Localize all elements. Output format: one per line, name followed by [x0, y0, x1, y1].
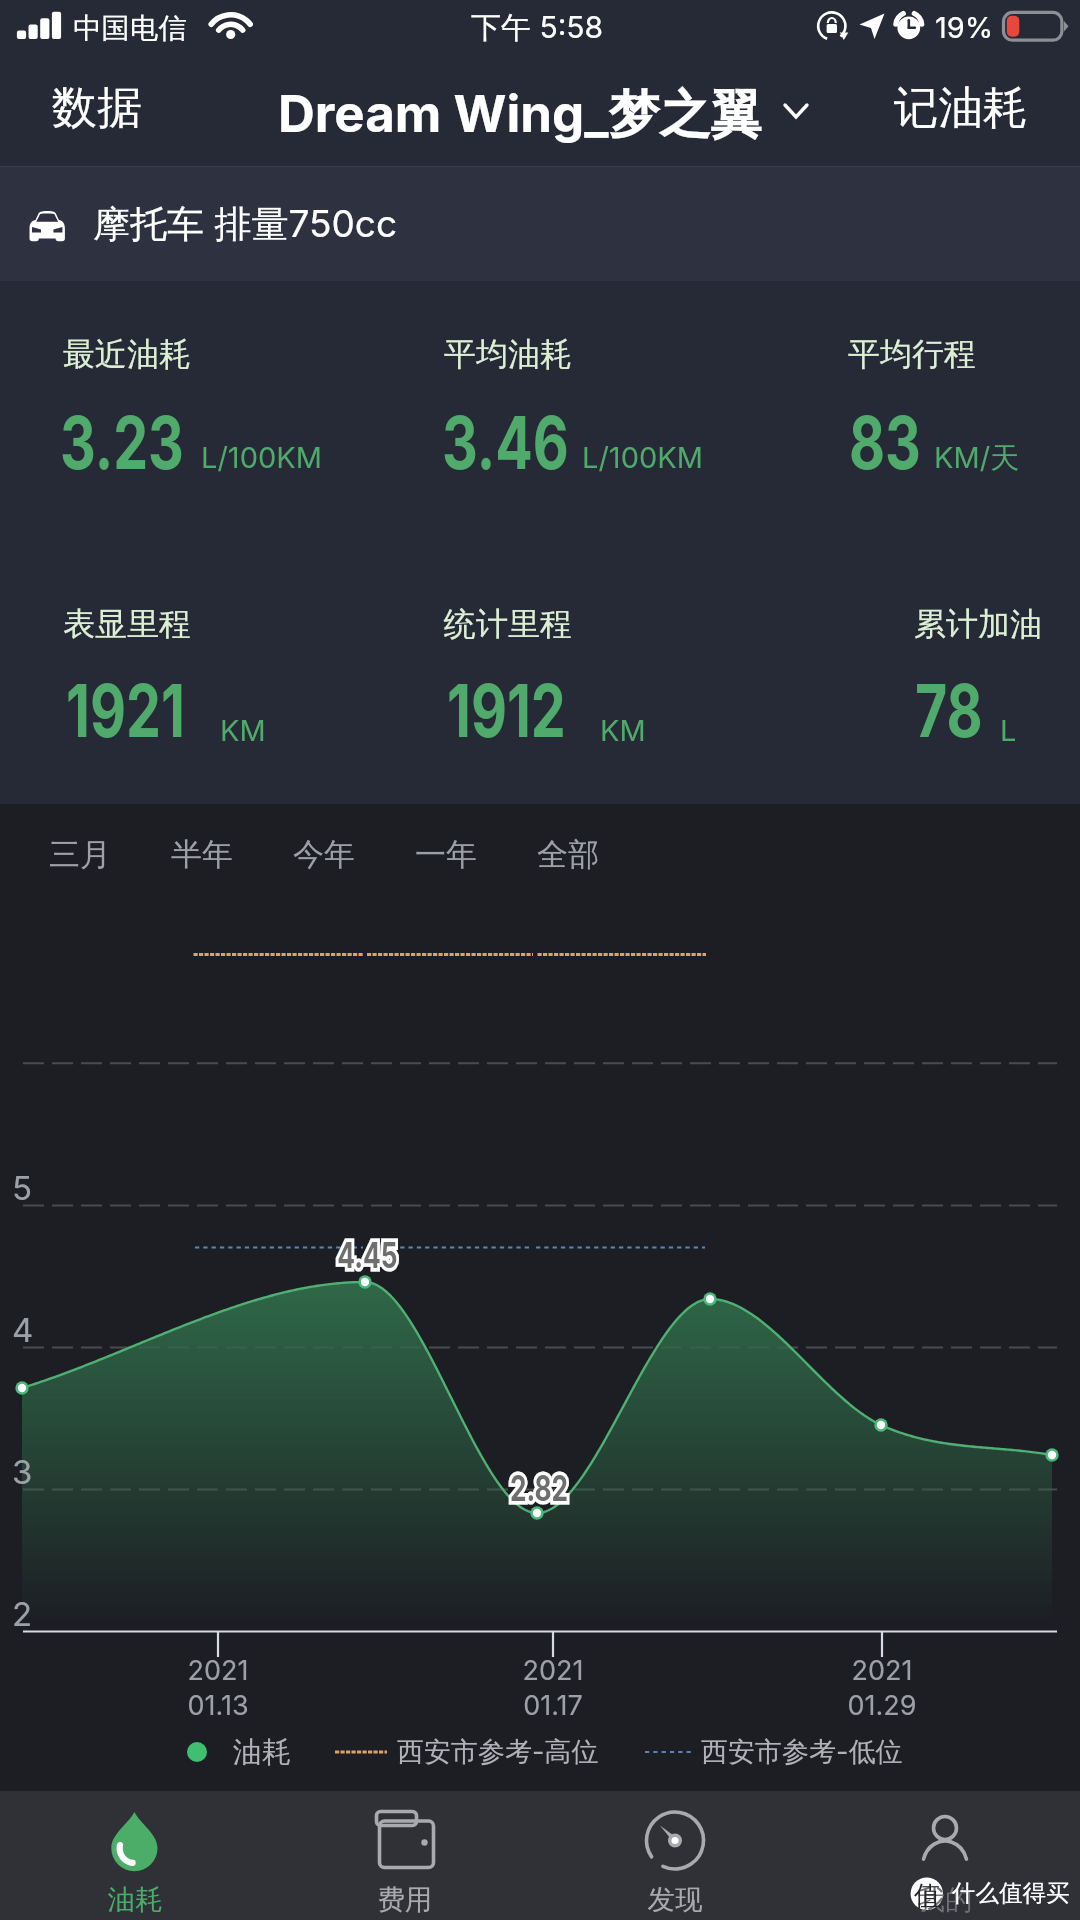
- staticText: 我的: [915, 1883, 975, 1918]
- staticText: 2.82: [510, 1467, 568, 1509]
- button[interactable]: 发现: [540, 1791, 810, 1920]
- staticText: 统计里程: [444, 604, 572, 644]
- button[interactable]: 半年: [153, 818, 251, 884]
- staticText: 01.13: [118, 1689, 318, 1722]
- staticText: 4.45: [337, 1234, 398, 1276]
- staticText: 今年: [293, 835, 355, 874]
- staticText: 油耗: [105, 1883, 165, 1918]
- staticText: 3.46: [442, 398, 569, 486]
- staticText: 什么值得买: [952, 1878, 1070, 1908]
- staticText: 平均油耗: [444, 334, 572, 374]
- staticText: 2021: [782, 1654, 982, 1687]
- staticText: 2021: [453, 1654, 653, 1687]
- staticText: KM: [220, 713, 266, 748]
- staticText: 油耗: [233, 1734, 291, 1771]
- staticText: 19%: [935, 10, 994, 45]
- button[interactable]: 一年: [397, 818, 495, 884]
- staticText: 2: [12, 1594, 33, 1634]
- staticText: 1912: [447, 666, 566, 754]
- staticText: L/100KM: [201, 440, 322, 475]
- staticText: 3.23: [60, 398, 185, 486]
- staticText: 01.29: [782, 1689, 982, 1722]
- staticText: 记油耗: [894, 80, 1028, 136]
- staticText: 最近油耗: [63, 334, 191, 374]
- staticText: 3: [12, 1452, 33, 1492]
- button[interactable]: 油耗: [0, 1791, 270, 1920]
- staticText: 摩托车 排量750cc: [93, 201, 398, 248]
- staticText: 中国电信: [73, 11, 187, 47]
- staticText: 83: [849, 398, 921, 486]
- button[interactable]: 全部: [519, 818, 617, 884]
- staticText: 01.17: [453, 1689, 653, 1722]
- staticText: 费用: [375, 1883, 435, 1918]
- staticText: KM/天: [934, 440, 1020, 477]
- staticText: 5: [12, 1168, 33, 1208]
- button[interactable]: 我的: [810, 1791, 1080, 1920]
- staticText: 西安市参考-高位: [397, 1735, 599, 1769]
- staticText: L: [1000, 713, 1017, 748]
- staticText: 半年: [171, 835, 233, 874]
- staticText: 发现: [645, 1883, 705, 1918]
- staticText: 表显里程: [63, 604, 191, 644]
- staticText: 一年: [415, 835, 477, 874]
- staticText: 数据: [52, 80, 142, 137]
- button[interactable]: 今年: [275, 818, 373, 884]
- staticText: 下午 5:58: [471, 9, 604, 47]
- staticText: 2.82: [510, 1467, 568, 1509]
- staticText: 2021: [118, 1654, 318, 1687]
- staticText: 4.45: [337, 1234, 398, 1276]
- button[interactable]: 记油耗: [860, 68, 1060, 164]
- staticText: 累计加油: [914, 604, 1042, 644]
- staticText: 全部: [537, 835, 599, 874]
- staticText: 78: [915, 666, 983, 754]
- staticText: 西安市参考-低位: [701, 1735, 903, 1769]
- staticText: 值: [914, 1879, 941, 1913]
- staticText: 4: [12, 1310, 34, 1350]
- staticText: KM: [600, 713, 646, 748]
- staticText: 1921: [66, 666, 185, 754]
- staticText: 平均行程: [848, 334, 976, 374]
- button[interactable]: Dream Wing_梦之翼: [265, 68, 825, 164]
- staticText: Dream Wing_梦之翼: [278, 83, 762, 148]
- button[interactable]: 三月: [31, 818, 129, 884]
- staticText: 三月: [49, 835, 111, 874]
- button[interactable]: 数据: [20, 68, 160, 164]
- button[interactable]: 费用: [270, 1791, 540, 1920]
- staticText: L/100KM: [582, 440, 703, 475]
